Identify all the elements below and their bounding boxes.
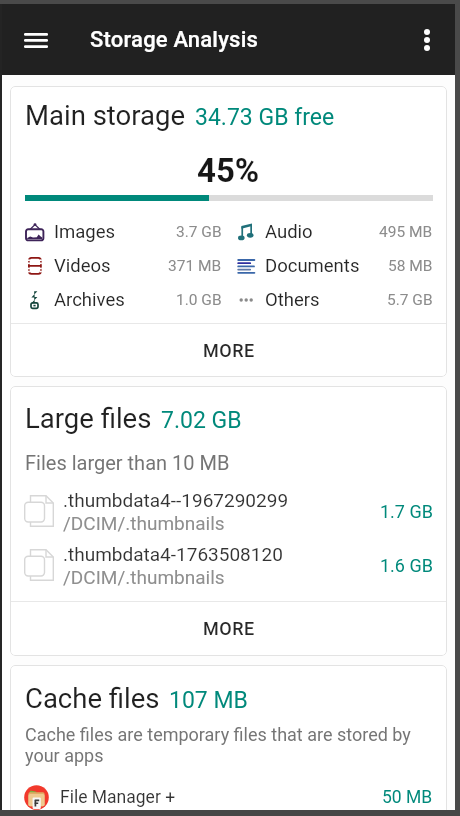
staticText: 371 MB [168, 257, 222, 275]
button[interactable] [407, 20, 447, 60]
button[interactable] [16, 20, 56, 60]
staticText: Images [54, 221, 116, 243]
staticText: MORE [203, 340, 255, 361]
button[interactable]: MORE [10, 602, 447, 655]
button[interactable]: .thumbdata4-1763508120 [10, 540, 447, 590]
staticText: 1.6 GB [380, 555, 433, 576]
button[interactable]: Videos [25, 249, 222, 283]
staticText: 45% [197, 151, 260, 190]
staticText: /DCIM/.thumbnails [63, 566, 225, 588]
staticText: .thumbdata4-1763508120 [63, 543, 283, 565]
staticText: Audio [265, 221, 313, 243]
staticText: File Manager + [60, 787, 176, 808]
staticText: 5.7 GB [387, 291, 433, 309]
button[interactable]: .thumbdata4--1967290299 [10, 486, 447, 536]
staticText: 1.0 GB [176, 291, 222, 309]
staticText: 58 MB [388, 257, 433, 275]
staticText: Storage Analysis [90, 27, 259, 53]
button[interactable]: Others [236, 283, 433, 317]
staticText: .thumbdata4--1967290299 [63, 489, 289, 511]
staticText: 1.7 GB [380, 501, 433, 522]
staticText: /DCIM/.thumbnails [63, 512, 225, 534]
staticText: MORE [203, 618, 255, 639]
staticText: 107 MB [169, 687, 248, 714]
button[interactable]: File Manager + [10, 778, 447, 816]
staticText: 3.7 GB [176, 223, 222, 241]
button[interactable]: Archives [25, 283, 222, 317]
staticText: Files larger than 10 MB [25, 451, 230, 474]
staticText: Cache files [25, 682, 160, 714]
button[interactable]: Images [25, 215, 222, 249]
staticText: 7.02 GB [161, 407, 242, 434]
staticText: 495 MB [379, 223, 433, 241]
button[interactable]: Documents [236, 249, 433, 283]
staticText: Documents [265, 255, 360, 277]
staticText: Others [265, 289, 320, 311]
button[interactable]: Audio [236, 215, 433, 249]
staticText: Cache files are temporary files that are… [25, 724, 411, 766]
staticText: Large files [25, 402, 152, 434]
button[interactable]: MORE [10, 324, 447, 377]
staticText: Main storage [25, 99, 186, 131]
staticText: Videos [54, 255, 111, 277]
staticText: 34.73 GB free [195, 104, 335, 131]
staticText: Archives [54, 289, 125, 311]
staticText: 50 MB [382, 787, 433, 808]
